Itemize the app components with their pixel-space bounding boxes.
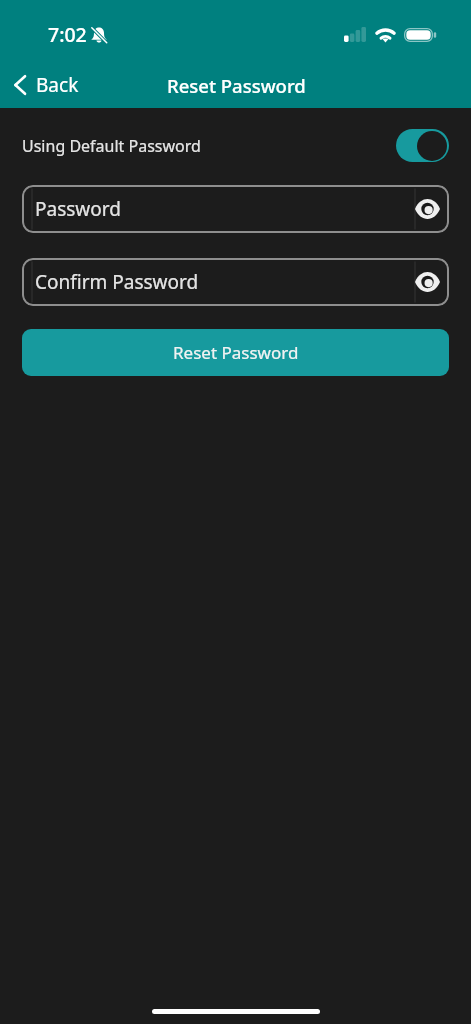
button[interactable]: Password: [22, 185, 449, 233]
button[interactable]: Show password: [412, 194, 442, 224]
button[interactable]: Show password: [412, 267, 442, 297]
button[interactable]: Back: [0, 64, 93, 106]
button[interactable]: Confirm Password: [22, 258, 449, 306]
staticText: Using Default Password: [22, 135, 201, 157]
staticText: Back: [36, 72, 79, 98]
staticText: 7:02: [48, 21, 87, 48]
staticText: Reset Password: [167, 73, 306, 98]
button[interactable]: Reset Password: [22, 329, 449, 376]
staticText: Confirm Password: [35, 269, 199, 295]
staticText: Reset Password: [173, 341, 299, 364]
staticText: Password: [35, 196, 121, 222]
button[interactable]: Using Default Password toggle: [396, 129, 449, 162]
